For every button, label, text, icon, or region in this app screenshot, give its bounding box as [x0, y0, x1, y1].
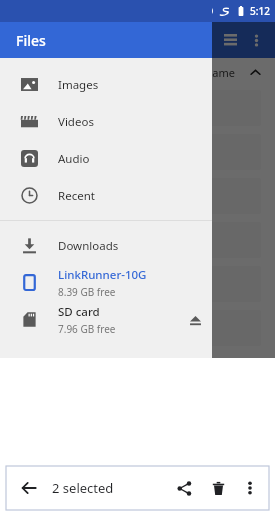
button[interactable]: Back [12, 471, 46, 505]
staticText: SD card [58, 304, 100, 320]
button[interactable]: Share [167, 471, 201, 505]
staticText: Name [204, 65, 236, 80]
staticText: Recent [58, 188, 95, 204]
staticText: Notifications [60, 277, 126, 292]
button[interactable]: Pictures [14, 310, 261, 346]
button[interactable]: Toggle list view [217, 27, 243, 53]
staticText: Android [60, 145, 102, 160]
button[interactable]: Audio [0, 140, 212, 177]
staticText: Files [16, 31, 46, 50]
button[interactable]: Downloads [0, 227, 212, 264]
staticText: Images [58, 77, 99, 93]
button[interactable]: Recent [0, 177, 212, 214]
staticText: Movies [60, 233, 97, 248]
staticText: 7.96 GB free [58, 322, 116, 336]
staticText: 8.39 GB free [58, 285, 116, 299]
staticText: Downloads [58, 238, 119, 254]
staticText: Pictures [60, 321, 102, 336]
staticText: Download [60, 189, 113, 204]
button[interactable]: Videos [0, 103, 212, 140]
button[interactable]: Android [14, 134, 261, 170]
button[interactable]: Alarms [14, 90, 261, 126]
staticText: Audio [58, 151, 90, 167]
button[interactable]: Download [14, 178, 261, 214]
button[interactable]: Eject SD card [178, 303, 212, 337]
button[interactable]: Notifications [14, 266, 261, 302]
button[interactable]: LinkRunner-10G [0, 264, 212, 301]
button[interactable]: Images [0, 66, 212, 103]
button[interactable]: More options [243, 27, 269, 53]
button[interactable]: Delete [201, 471, 235, 505]
staticText: Videos [58, 114, 94, 130]
staticText: 5:12 [250, 4, 270, 18]
staticText: 2 selected [52, 479, 114, 497]
button[interactable]: Movies [14, 222, 261, 258]
button[interactable]: SD card [0, 301, 212, 338]
staticText: LinkRunner-10G [58, 267, 147, 283]
button[interactable]: More options [235, 473, 265, 503]
